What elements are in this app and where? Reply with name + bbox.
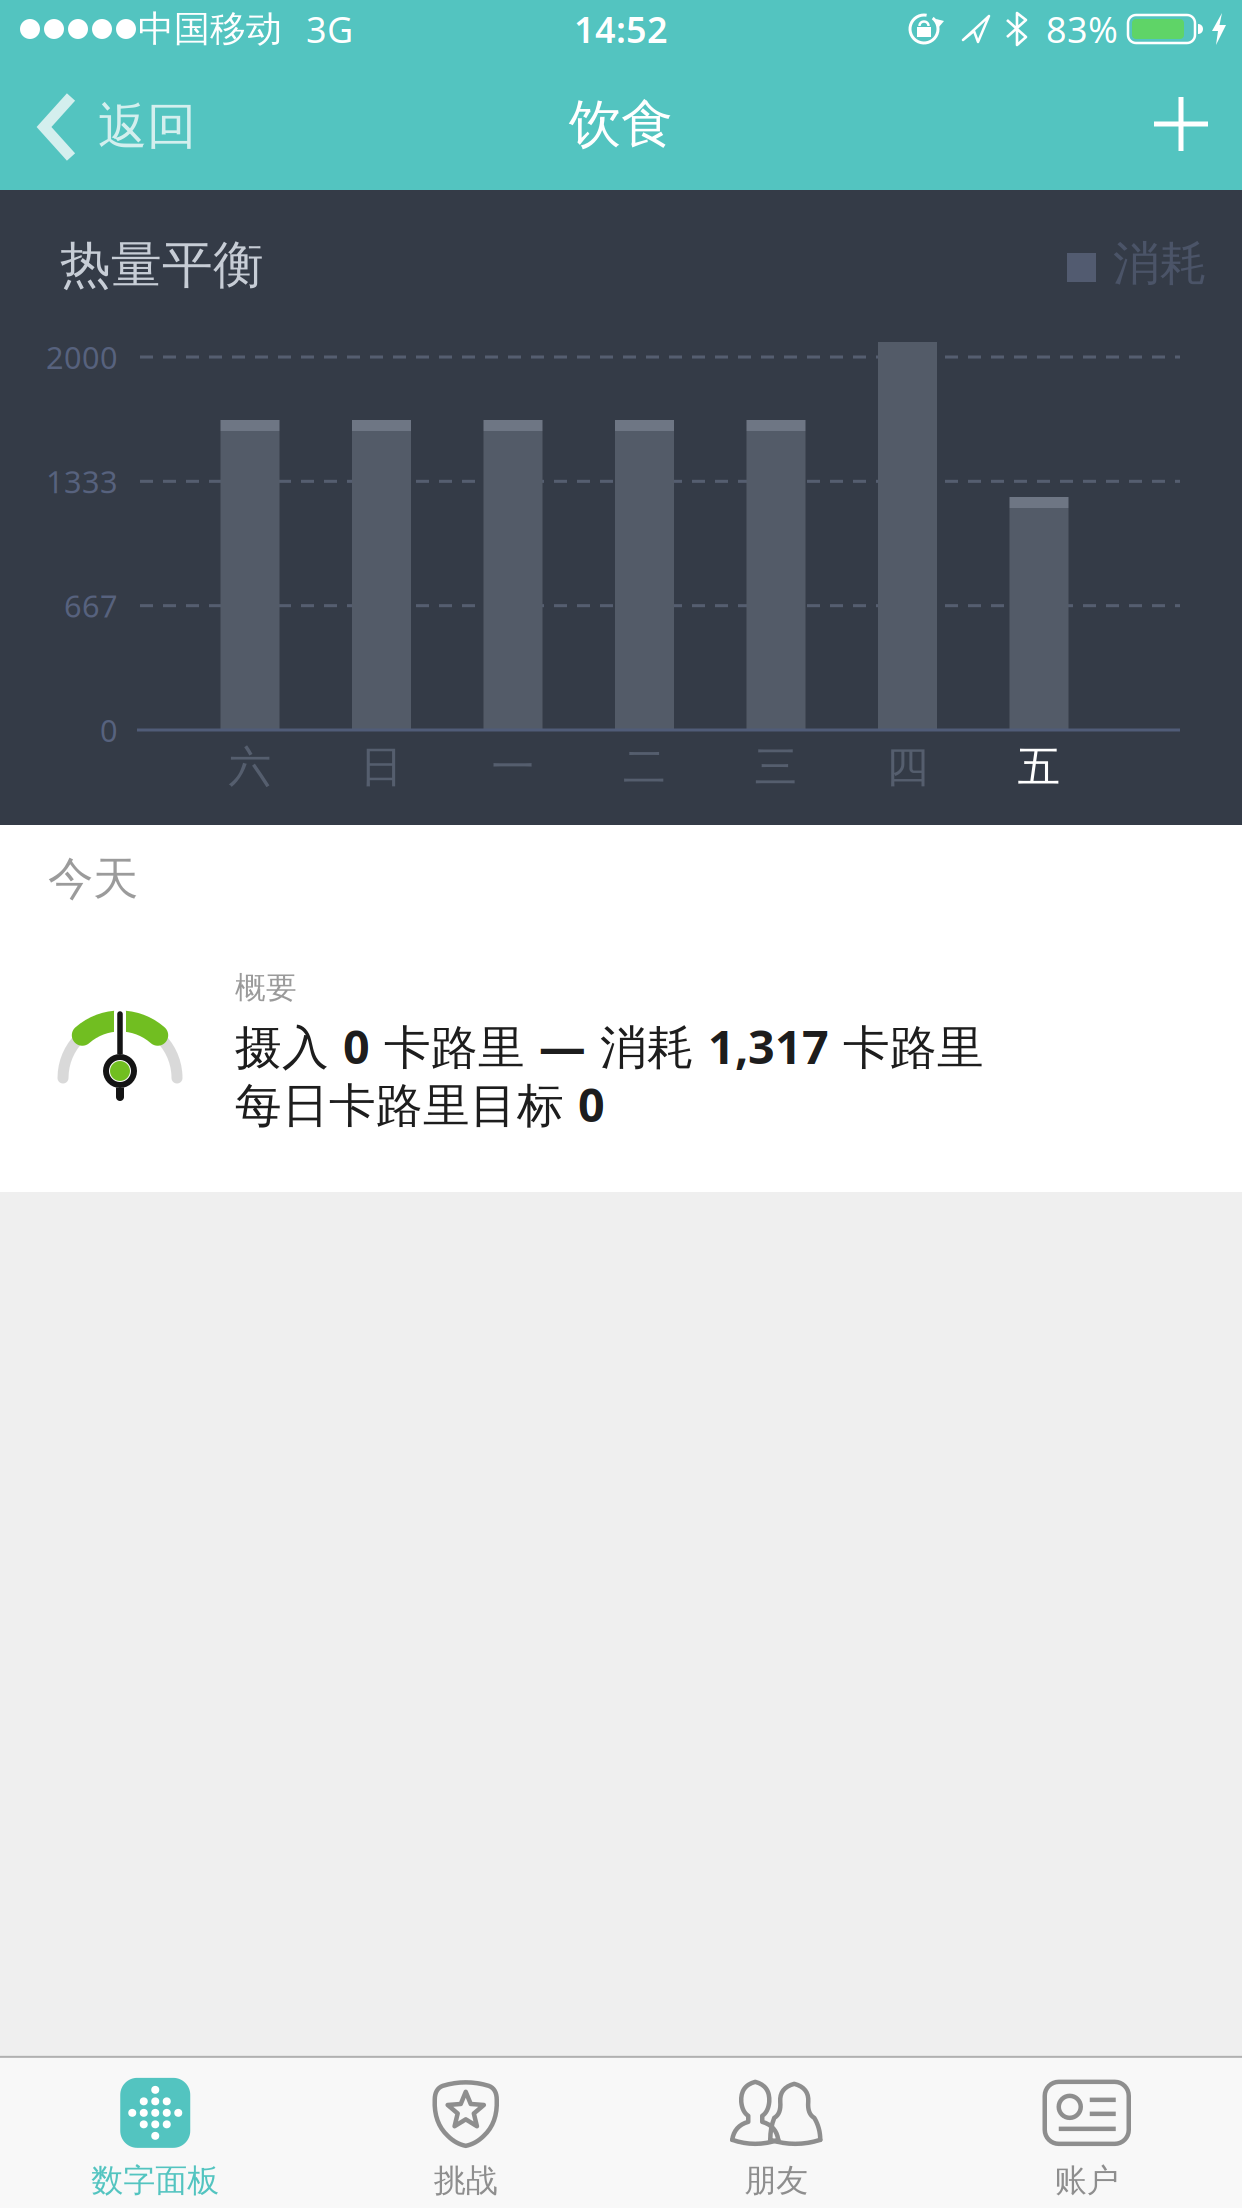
staticText: 2000 — [46, 337, 118, 377]
staticText: 今天 — [48, 851, 138, 907]
staticText: 日 — [360, 741, 403, 793]
staticText: 朋友 — [744, 2161, 808, 2200]
staticText: 概要 — [235, 969, 297, 1007]
button[interactable]: 概要 — [0, 825, 1242, 1192]
staticText: 饮食 — [569, 92, 673, 156]
staticText: 83% — [1046, 5, 1118, 53]
staticText: 六 — [228, 741, 271, 793]
staticText: 四 — [886, 741, 929, 793]
button[interactable]: 数字面板 — [0, 2078, 310, 2200]
staticText: 数字面板 — [91, 2161, 219, 2200]
staticText: 1333 — [46, 461, 118, 502]
staticText: 挑战 — [434, 2161, 498, 2200]
staticText: 五 — [1017, 741, 1060, 793]
staticText: 每日卡路里目标 0 — [235, 1073, 605, 1135]
staticText: 二 — [623, 741, 666, 793]
staticText: 中国移动 — [138, 7, 282, 51]
staticText: 账户 — [1055, 2161, 1119, 2200]
button[interactable]: 返回 — [0, 87, 196, 161]
staticText: 三 — [754, 741, 797, 793]
button[interactable]: Add — [1154, 97, 1242, 151]
button[interactable]: 挑战 — [310, 2078, 621, 2200]
staticText: 0 — [100, 710, 118, 750]
button[interactable]: 账户 — [931, 2078, 1242, 2200]
staticText: 返回 — [98, 96, 196, 157]
staticText: 一 — [491, 741, 534, 793]
staticText: 667 — [64, 585, 118, 626]
staticText: 热量平衡 — [60, 234, 264, 296]
staticText: 摄入 0 卡路里 — 消耗 1,317 卡路里 — [235, 1015, 984, 1077]
staticText: 3G — [306, 5, 353, 53]
button[interactable]: 朋友 — [621, 2078, 931, 2200]
staticText: 14:52 — [574, 5, 668, 53]
staticText: 消耗 — [1113, 235, 1207, 292]
